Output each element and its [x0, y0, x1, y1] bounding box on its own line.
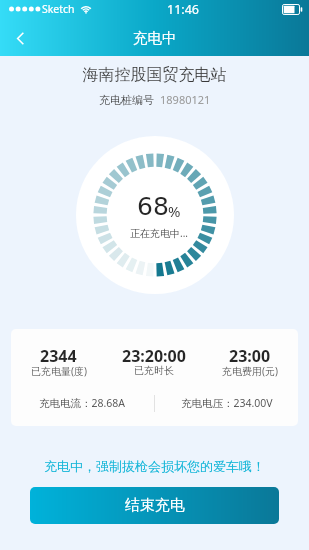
staticText: Sketch [42, 2, 75, 16]
staticText: 23:20:00 [122, 345, 186, 367]
staticText: 海南控股国贸充电站 [0, 65, 309, 85]
button[interactable]: Back [0, 20, 40, 56]
staticText: 充电桩编号 [99, 93, 154, 107]
staticText: 已充时长 [134, 364, 174, 377]
staticText: 正在充电中... [130, 226, 189, 240]
staticText: 2344 [40, 345, 77, 367]
staticText: 23:00 [229, 345, 271, 367]
staticText: 结束充电 [125, 496, 185, 515]
button[interactable]: 结束充电 [30, 487, 279, 524]
staticText: 充电中 [133, 29, 177, 47]
staticText: 68 [137, 192, 169, 221]
staticText: 充电中，强制拔枪会损坏您的爱车哦！ [0, 458, 309, 474]
staticText: 充电费用(元) [222, 364, 278, 378]
staticText: 11:46 [167, 1, 199, 18]
staticText: 充电电流：28.68A [39, 396, 126, 410]
staticText: 充电电压：234.00V [181, 396, 273, 410]
staticText: 18980121 [160, 92, 211, 107]
staticText: % [168, 201, 181, 221]
staticText: 已充电量(度) [31, 364, 87, 378]
